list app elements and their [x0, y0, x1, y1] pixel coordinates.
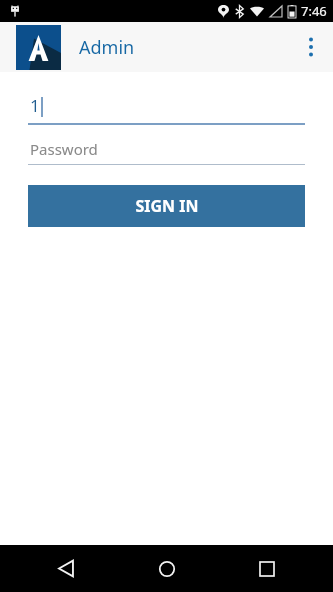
- button[interactable]: Home: [132, 545, 202, 592]
- staticText: Admin: [79, 35, 135, 60]
- button[interactable]: More options: [289, 22, 333, 72]
- button[interactable]: Recent apps: [232, 545, 302, 592]
- staticText: SIGN IN: [135, 195, 199, 217]
- button[interactable]: 1: [28, 94, 305, 125]
- staticText: 1: [30, 94, 40, 117]
- button[interactable]: App logo: [16, 25, 61, 70]
- button[interactable]: Back: [31, 545, 101, 592]
- button[interactable]: Password: [28, 138, 305, 165]
- button[interactable]: SIGN IN: [28, 185, 305, 227]
- staticText: 7:46: [301, 2, 327, 20]
- staticText: Password: [30, 139, 98, 159]
